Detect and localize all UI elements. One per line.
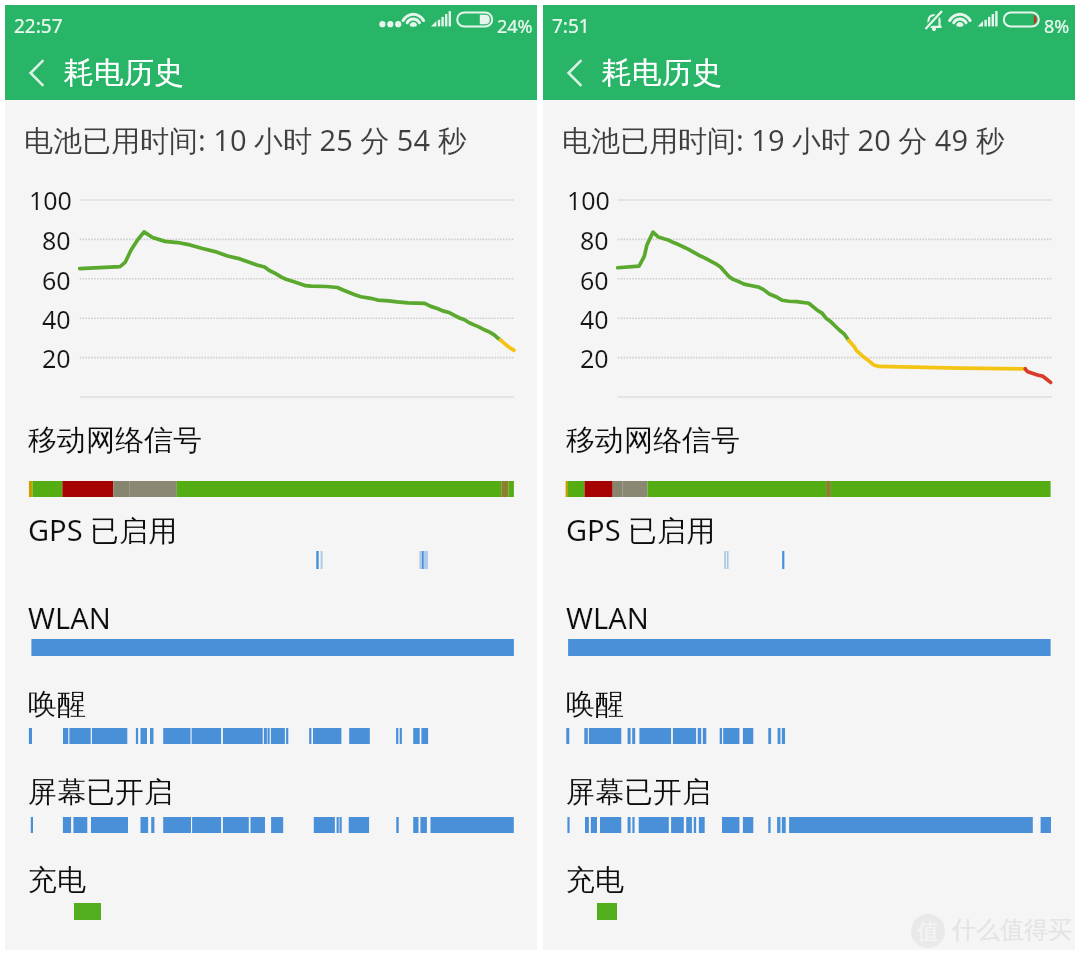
staticText: GPS 已启用 <box>566 510 716 550</box>
staticText: 100 <box>567 183 610 217</box>
staticText: 值 <box>917 918 939 946</box>
staticText: 60 <box>42 263 71 297</box>
staticText: 屏幕已开启 <box>566 774 711 811</box>
staticText: 22:57 <box>14 13 63 39</box>
staticText: WLAN <box>28 598 111 637</box>
staticText: 80 <box>580 223 609 257</box>
staticText: 60 <box>580 263 609 297</box>
staticText: 100 <box>29 183 72 217</box>
button[interactable]: Back <box>547 45 603 101</box>
staticText: 24% <box>497 14 533 39</box>
button[interactable]: Back <box>9 45 65 101</box>
staticText: 8% <box>1044 14 1070 39</box>
staticText: 什么值得买 <box>952 915 1072 945</box>
staticText: GPS 已启用 <box>28 510 178 550</box>
staticText: 充电 <box>566 862 624 899</box>
staticText: 屏幕已开启 <box>28 774 173 811</box>
staticText: 移动网络信号 <box>566 422 740 459</box>
staticText: 耗电历史 <box>64 54 184 92</box>
staticText: 7:51 <box>552 13 590 39</box>
staticText: 电池已用时间: 10 小时 25 分 54 秒 <box>24 120 467 160</box>
staticText: 充电 <box>28 862 86 899</box>
staticText: 耗电历史 <box>602 54 722 92</box>
staticText: 移动网络信号 <box>28 422 202 459</box>
staticText: 20 <box>42 341 71 375</box>
staticText: 40 <box>42 302 71 336</box>
staticText: WLAN <box>566 598 649 637</box>
staticText: 20 <box>580 341 609 375</box>
staticText: 唤醒 <box>566 686 624 723</box>
staticText: 40 <box>580 302 609 336</box>
staticText: 唤醒 <box>28 686 86 723</box>
staticText: 电池已用时间: 19 小时 20 分 49 秒 <box>562 120 1005 160</box>
staticText: 80 <box>42 223 71 257</box>
